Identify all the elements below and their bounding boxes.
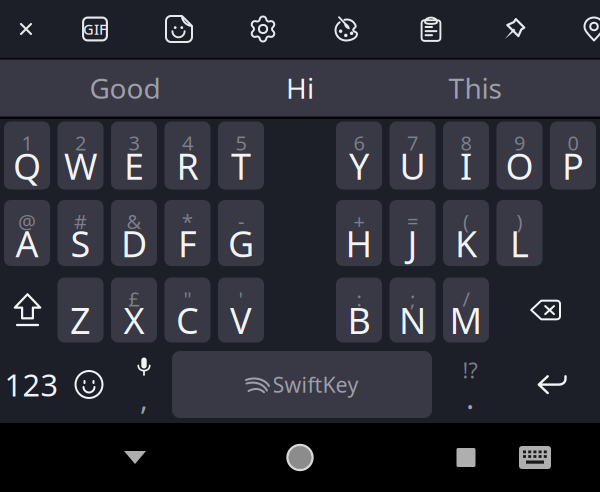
staticText: 0 [567,129,578,156]
button[interactable]: + [336,200,382,266]
button[interactable]: Themes [319,0,375,58]
button[interactable]: This [387,59,562,116]
staticText: N [399,296,426,344]
staticText: * [182,208,193,235]
button[interactable]: Recent apps [436,423,496,492]
staticText: V [230,296,252,344]
button[interactable]: 3 [111,121,157,189]
button[interactable]: Return [522,351,582,418]
staticText: # [74,208,87,235]
button[interactable]: # [57,200,103,266]
button[interactable]: / [443,277,489,342]
staticText: ) [516,208,522,235]
staticText: - [238,208,244,235]
button[interactable]: Emoji [62,351,116,418]
staticText: W [64,142,97,190]
staticText: O [505,142,533,190]
button[interactable]: !? [443,351,497,418]
staticText: . [466,377,474,418]
button[interactable]: Good [37,59,212,116]
staticText: Y [349,142,369,190]
staticText: + [353,208,364,235]
staticText: 2 [75,129,86,156]
button[interactable]: & [111,200,157,266]
button[interactable]: - [218,200,264,266]
staticText: Q [13,142,41,190]
button[interactable]: 9 [496,121,542,189]
staticText: & [126,208,141,235]
staticText: B [347,296,370,344]
staticText: M [449,296,482,344]
staticText: / [462,285,469,312]
staticText: " [183,285,191,312]
staticText: X [123,296,144,344]
button[interactable]: * [164,200,210,266]
button[interactable]: ; [389,277,435,342]
staticText: I [460,142,472,190]
staticText: D [121,219,147,267]
button[interactable]: = [389,200,435,266]
button[interactable]: Stickers [151,0,207,58]
staticText: 1 [21,129,32,156]
button[interactable]: Clipboard [403,0,459,58]
button[interactable]: _ [57,277,103,342]
button[interactable]: 123 [1,351,61,418]
button[interactable]: Hi [212,59,387,116]
button[interactable]: £ [111,277,157,342]
staticText: U [399,142,425,190]
staticText: _ [76,285,85,312]
button[interactable]: Voice input [117,351,171,418]
staticText: 6 [353,129,364,156]
button[interactable]: : [336,277,382,342]
staticText: : [356,285,361,312]
button[interactable]: 5 [218,121,264,189]
button[interactable]: Home [270,423,330,492]
button[interactable]: Backspace [518,277,574,342]
staticText: = [407,208,418,235]
staticText: 7 [407,129,418,156]
staticText: Z [70,296,91,344]
staticText: ' [238,285,243,312]
staticText: 9 [514,129,525,156]
staticText: F [178,219,197,267]
staticText: C [176,296,199,344]
staticText: E [124,142,144,190]
button[interactable]: 6 [336,121,382,189]
button[interactable]: 1 [4,121,50,189]
button[interactable]: Location [566,0,600,58]
staticText: Hi [286,69,314,107]
staticText: L [510,219,529,267]
staticText: 3 [128,129,139,156]
button[interactable]: ( [443,200,489,266]
staticText: K [455,219,477,267]
button[interactable]: 0 [550,121,596,189]
staticText: 4 [182,129,193,156]
button[interactable]: ' [218,277,264,342]
button[interactable]: 8 [443,121,489,189]
button[interactable]: Hide keyboard [105,423,165,492]
staticText: 5 [235,129,246,156]
button[interactable]: " [164,277,210,342]
button[interactable]: GIF [67,0,123,58]
staticText: 123 [4,364,58,405]
staticText: G [228,219,254,267]
staticText: This [448,69,501,107]
staticText: H [345,219,372,267]
staticText: , [140,379,148,418]
button[interactable]: ) [496,200,542,266]
button[interactable]: Close [0,0,54,58]
button[interactable]: 2 [57,121,103,189]
button[interactable]: 7 [389,121,435,189]
staticText: ; [410,285,415,312]
button[interactable]: Shift [1,277,53,342]
button[interactable]: Settings [235,0,291,58]
staticText: @ [18,208,36,235]
staticText: Good [89,69,160,107]
button[interactable]: Space [172,351,432,418]
button[interactable]: Switch keyboard [505,423,565,492]
staticText: ( [463,208,469,235]
button[interactable]: @ [4,200,50,266]
button[interactable]: 4 [164,121,210,189]
button[interactable]: Pin [487,0,543,58]
staticText: A [15,219,38,267]
